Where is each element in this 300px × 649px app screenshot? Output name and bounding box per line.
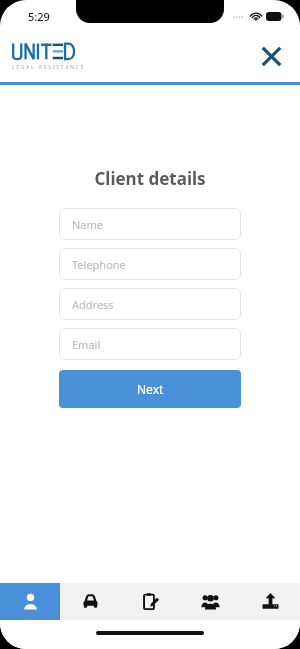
staticText: Address xyxy=(72,297,114,312)
button[interactable]: Telephone xyxy=(59,248,241,280)
button[interactable]: Name xyxy=(59,208,241,240)
button[interactable]: Vehicle xyxy=(60,583,120,620)
staticText: Name xyxy=(72,217,104,232)
staticText: 5:29 xyxy=(28,9,50,24)
staticText: Telephone xyxy=(72,257,126,272)
staticText: Client details xyxy=(94,167,206,190)
button[interactable]: Forms xyxy=(120,583,180,620)
button[interactable]: Client xyxy=(0,583,60,620)
button[interactable]: Address xyxy=(59,288,241,320)
button[interactable]: Next xyxy=(59,370,241,408)
button[interactable]: Passengers xyxy=(180,583,240,620)
staticText: Next xyxy=(137,381,164,397)
button[interactable]: Upload xyxy=(240,583,300,620)
button[interactable]: Email xyxy=(59,328,241,360)
staticText: Email xyxy=(72,337,101,352)
staticText: L E G A L A S S I S T A N C E xyxy=(12,64,84,70)
button[interactable]: Close xyxy=(254,39,288,73)
